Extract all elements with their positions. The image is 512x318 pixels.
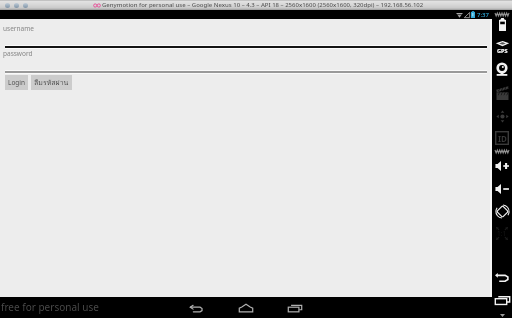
button[interactable]: Video recording (492, 86, 512, 100)
button[interactable]: Window button (23, 3, 28, 8)
button[interactable]: Back (185, 298, 209, 317)
button[interactable]: Volume up (492, 160, 512, 172)
button[interactable]: Camera (492, 62, 512, 77)
button[interactable]: Move (492, 110, 512, 123)
button[interactable]: GPS (492, 41, 512, 52)
button[interactable]: More options (492, 312, 512, 318)
button[interactable]: Volume down (492, 183, 512, 195)
button[interactable]: Login (5, 75, 28, 90)
staticText: free for personal use (1, 300, 99, 314)
staticText: password (3, 49, 33, 58)
button[interactable]: Zoom 1:1 (492, 226, 512, 241)
staticText: ID (498, 133, 507, 144)
staticText: Login (8, 78, 26, 87)
staticText: 7:37 (477, 11, 489, 19)
staticText: ลืมรหัสผ่าน (34, 77, 69, 88)
staticText: 1:1 (497, 229, 507, 238)
staticText: Genymotion for personal use – Google Nex… (102, 1, 424, 9)
button[interactable]: Window button (14, 3, 19, 8)
button[interactable]: Recent apps (283, 298, 307, 317)
button[interactable]: Copy (492, 296, 512, 305)
button[interactable]: Device ID (492, 131, 512, 145)
button[interactable]: Rotate screen (492, 204, 512, 219)
button[interactable]: Home (234, 298, 258, 317)
button[interactable]: ลืมรหัสผ่าน (31, 75, 72, 90)
button[interactable]: Window button (5, 3, 10, 8)
staticText: username (3, 24, 34, 33)
button[interactable]: Battery (492, 18, 512, 31)
staticText: GPS (497, 47, 508, 53)
button[interactable]: Undo (492, 273, 512, 282)
